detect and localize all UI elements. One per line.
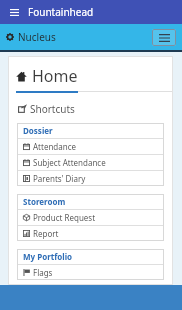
- button[interactable]: Open navigation menu: [7, 5, 21, 19]
- staticText: Storeroom: [23, 196, 66, 207]
- staticText: Home: [32, 65, 78, 87]
- button[interactable]: Subject Attendance: [17, 155, 164, 170]
- staticText: Shortcuts: [30, 102, 75, 116]
- staticText: Product Request: [33, 212, 96, 223]
- staticText: Flags: [33, 267, 53, 278]
- button[interactable]: Parents' Diary: [17, 171, 164, 186]
- button[interactable]: Attendance: [17, 139, 164, 154]
- staticText: My Portfolio: [23, 251, 73, 262]
- button[interactable]: Storeroom: [17, 194, 164, 209]
- staticText: Report: [33, 228, 59, 239]
- staticText: Subject Attendance: [33, 157, 106, 168]
- button[interactable]: My Portfolio: [17, 249, 164, 264]
- button[interactable]: Report: [17, 226, 164, 241]
- staticText: Fountainhead: [28, 5, 94, 19]
- button[interactable]: Menu: [152, 29, 176, 46]
- staticText: Nucleus: [18, 30, 56, 44]
- staticText: Attendance: [33, 141, 77, 152]
- staticText: Parents' Diary: [33, 173, 86, 184]
- button[interactable]: Flags: [17, 265, 164, 280]
- button[interactable]: Product Request: [17, 210, 164, 225]
- staticText: Dossier: [23, 125, 53, 136]
- button[interactable]: Dossier: [17, 123, 164, 138]
